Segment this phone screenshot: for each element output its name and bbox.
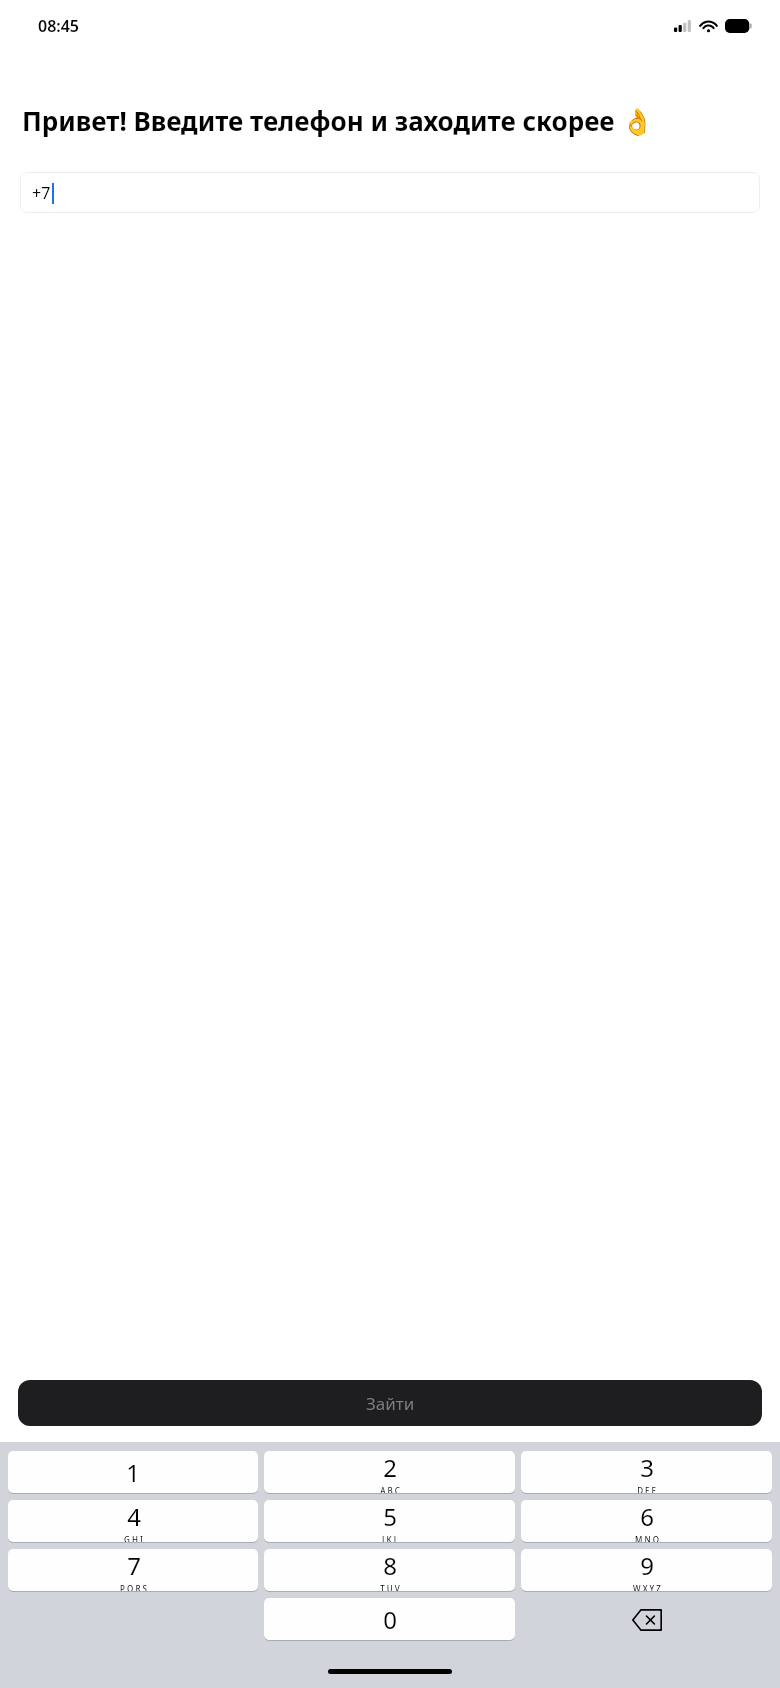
staticText: G H I xyxy=(124,1534,143,1542)
staticText: A B C xyxy=(380,1485,400,1493)
button[interactable]: Backspace xyxy=(521,1598,772,1641)
staticText: 7 xyxy=(127,1549,141,1582)
staticText: 4 xyxy=(127,1500,141,1533)
staticText: 9 xyxy=(640,1549,654,1582)
button[interactable]: 3 xyxy=(521,1451,772,1494)
staticText: W X Y Z xyxy=(633,1583,661,1591)
staticText: 6 xyxy=(640,1500,654,1533)
staticText: M N O xyxy=(635,1534,659,1542)
button[interactable]: 4 xyxy=(8,1500,258,1543)
staticText: 08:45 xyxy=(38,15,80,37)
button[interactable]: 1 xyxy=(8,1451,258,1494)
button[interactable]: 0 xyxy=(264,1598,515,1641)
staticText: 0 xyxy=(383,1603,397,1636)
button[interactable]: 9 xyxy=(521,1549,772,1592)
staticText: 8 xyxy=(383,1549,397,1582)
button[interactable]: 2 xyxy=(264,1451,515,1494)
staticText: D E F xyxy=(637,1485,656,1493)
staticText: Зайти xyxy=(366,1392,415,1415)
button[interactable]: 8 xyxy=(264,1549,515,1592)
button[interactable]: Зайти xyxy=(18,1380,762,1426)
staticText: T U V xyxy=(380,1583,400,1591)
staticText: 5 xyxy=(383,1500,397,1533)
staticText: P Q R S xyxy=(120,1583,147,1591)
staticText: +7 xyxy=(32,182,51,204)
staticText: J K L xyxy=(382,1534,398,1542)
button[interactable]: 7 xyxy=(8,1549,258,1592)
staticText: Привет! Введите телефон и заходите скоре… xyxy=(22,103,654,138)
staticText: 2 xyxy=(383,1451,397,1484)
staticText: 1 xyxy=(126,1456,140,1489)
button[interactable]: 5 xyxy=(264,1500,515,1543)
button[interactable]: 6 xyxy=(521,1500,772,1543)
button[interactable]: +7 xyxy=(20,172,760,213)
staticText: 3 xyxy=(640,1451,654,1484)
